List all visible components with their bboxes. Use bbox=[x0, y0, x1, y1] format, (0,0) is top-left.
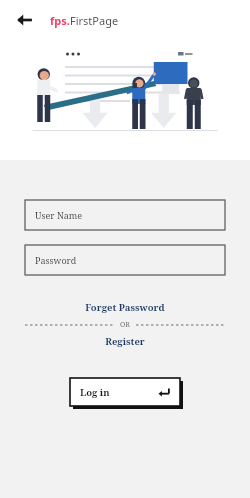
button[interactable]: Register bbox=[25, 335, 225, 348]
staticText: Log in bbox=[80, 386, 110, 399]
button[interactable]: User Name bbox=[25, 200, 225, 230]
staticText: fps. bbox=[50, 13, 70, 28]
staticText: FirstPage bbox=[70, 13, 119, 28]
staticText: Register bbox=[105, 335, 145, 348]
staticText: Password bbox=[35, 254, 77, 266]
button[interactable]: Forget Password bbox=[25, 301, 225, 314]
button[interactable]: Password bbox=[25, 245, 225, 275]
staticText: User Name bbox=[35, 209, 83, 221]
button[interactable]: Back bbox=[12, 8, 36, 32]
staticText: OR bbox=[120, 320, 130, 330]
button[interactable]: Log in bbox=[70, 378, 180, 406]
staticText: Forget Password bbox=[85, 301, 165, 314]
